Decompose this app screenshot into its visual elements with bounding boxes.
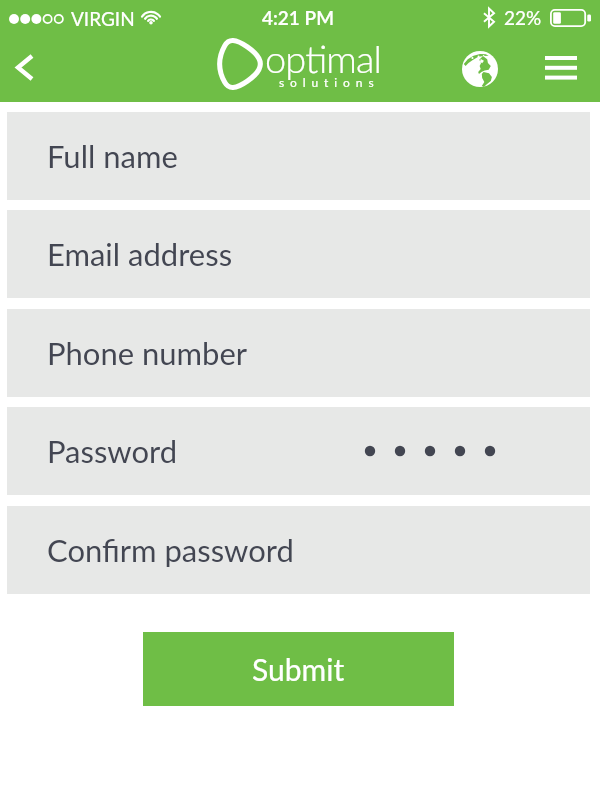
staticText: optimal — [265, 35, 382, 81]
staticText: Phone number — [47, 334, 248, 371]
staticText: Full name — [47, 137, 178, 174]
button[interactable]: Menu — [522, 40, 590, 96]
button[interactable]: Full name — [7, 112, 590, 200]
button[interactable]: Language — [452, 41, 508, 97]
staticText: VIRGIN — [71, 7, 135, 30]
staticText: 4:21 PM — [262, 6, 335, 29]
staticText: Password — [47, 432, 178, 469]
staticText: Submit — [252, 651, 345, 687]
staticText: Confirm password — [47, 531, 294, 568]
button[interactable]: Email address — [7, 210, 590, 298]
staticText: Email address — [47, 235, 233, 272]
button[interactable]: Phone number — [7, 309, 590, 397]
button[interactable]: Confirm password — [7, 506, 590, 594]
button[interactable]: Password — [7, 407, 590, 495]
staticText: solutions — [279, 75, 380, 89]
button[interactable]: Submit — [143, 632, 454, 706]
button[interactable]: Back — [0, 42, 50, 92]
staticText: 22% — [504, 6, 542, 29]
